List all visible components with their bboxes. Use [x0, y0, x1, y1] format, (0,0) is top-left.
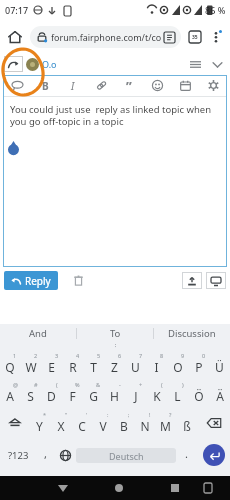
staticText: #	[34, 381, 38, 388]
staticText: ?	[169, 411, 172, 418]
staticText: %	[75, 381, 80, 388]
button[interactable]: Enter	[203, 444, 225, 466]
button[interactable]: Shift	[0, 407, 29, 438]
button[interactable]: ;	[113, 407, 134, 438]
button[interactable]: forum.fairphone.com/t/co	[30, 26, 181, 48]
staticText: ß	[183, 418, 191, 434]
staticText: 86 %	[205, 4, 226, 16]
button[interactable]: (	[146, 377, 167, 407]
button[interactable]: -	[104, 377, 125, 407]
button[interactable]: 0	[188, 349, 209, 377]
button[interactable]: Discussion	[154, 324, 230, 343]
staticText: C	[78, 418, 86, 434]
button[interactable]: Backspace	[197, 407, 230, 438]
button[interactable]: emoji	[143, 75, 171, 96]
button[interactable]: ,	[36, 438, 55, 472]
staticText: ;	[128, 411, 130, 418]
button[interactable]: ?	[155, 407, 176, 438]
button[interactable]: B	[31, 75, 59, 96]
button[interactable]: Recents	[157, 476, 192, 500]
button[interactable]: calendar	[171, 75, 199, 96]
staticText: O	[173, 359, 183, 375]
button[interactable]: Reply	[4, 271, 58, 290]
button[interactable]: 5	[83, 349, 104, 377]
button[interactable]: @	[0, 377, 20, 407]
button[interactable]: ß	[176, 407, 197, 438]
staticText: '	[86, 411, 88, 418]
button[interactable]: Reply as linked topic	[4, 56, 23, 72]
button[interactable]: '	[71, 407, 92, 438]
button[interactable]: 2	[20, 349, 41, 377]
button[interactable]: Ü	[209, 349, 230, 377]
button[interactable]: ?123	[0, 438, 36, 472]
staticText: ⋮	[112, 343, 119, 349]
staticText: B	[42, 79, 49, 93]
button[interactable]: &	[83, 377, 104, 407]
button[interactable]: link	[87, 75, 115, 96]
staticText: ”	[126, 77, 132, 95]
staticText: .	[185, 446, 188, 461]
button[interactable]: Preview	[206, 272, 226, 289]
button[interactable]: quote	[3, 75, 31, 96]
staticText: K	[153, 388, 161, 404]
button[interactable]: 9	[167, 349, 188, 377]
button[interactable]: Home	[4, 26, 26, 48]
button[interactable]: More options	[206, 27, 226, 47]
button[interactable]: 4	[62, 349, 83, 377]
button[interactable]: #	[20, 377, 41, 407]
button[interactable]: gear	[199, 75, 227, 96]
button[interactable]: Upload	[182, 272, 202, 289]
staticText: And	[29, 327, 47, 340]
button[interactable]: "	[50, 407, 71, 438]
staticText: Z	[111, 359, 118, 375]
button[interactable]: Rotate	[192, 476, 223, 500]
staticText: M	[160, 418, 171, 434]
button[interactable]: 1	[0, 349, 20, 377]
button[interactable]: Ä	[209, 377, 230, 407]
button[interactable]: Delete draft	[68, 270, 88, 290]
button[interactable]: Collapse	[208, 55, 226, 73]
button[interactable]: )	[167, 377, 188, 407]
button[interactable]: 3	[41, 349, 62, 377]
staticText: W	[25, 359, 37, 375]
button[interactable]: And	[0, 324, 76, 343]
button[interactable]: Toggle fullscreen	[186, 55, 204, 73]
button[interactable]: blockquote	[115, 75, 143, 96]
staticText: (	[161, 381, 163, 388]
button[interactable]: Deutsch	[76, 448, 176, 463]
button[interactable]: Ö	[188, 377, 209, 407]
staticText: Y	[36, 418, 43, 434]
staticText: 35	[192, 34, 198, 41]
staticText: 6	[118, 352, 122, 359]
button[interactable]: (	[41, 377, 62, 407]
button[interactable]: +	[125, 377, 146, 407]
button[interactable]: .	[176, 438, 197, 472]
staticText: 9	[181, 352, 185, 359]
staticText: To	[110, 327, 121, 340]
staticText: G	[89, 388, 98, 404]
button[interactable]: :	[92, 407, 113, 438]
button[interactable]: Tabs	[184, 26, 206, 48]
staticText: 2	[34, 352, 38, 359]
staticText: Deutsch	[109, 450, 144, 462]
staticText: Discussion	[168, 327, 216, 340]
staticText: 0	[202, 352, 206, 359]
button[interactable]: !	[134, 407, 155, 438]
button[interactable]: Change language	[55, 438, 76, 472]
staticText: 07:17	[5, 4, 29, 16]
staticText: H	[110, 388, 119, 404]
button[interactable]: Reader mode	[162, 29, 177, 45]
button[interactable]: Back	[45, 476, 80, 500]
button[interactable]: Home	[101, 476, 136, 500]
button[interactable]: %	[62, 377, 83, 407]
button[interactable]: *	[29, 407, 50, 438]
button[interactable]: I	[59, 75, 87, 96]
staticText: P	[195, 359, 203, 375]
staticText: I	[154, 359, 159, 375]
button[interactable]: 8	[146, 349, 167, 377]
button[interactable]: To	[77, 324, 153, 343]
staticText: Ö	[194, 388, 204, 404]
button[interactable]: 7	[125, 349, 146, 377]
button[interactable]: 6	[104, 349, 125, 377]
staticText: forum.fairphone.com/t/co	[51, 31, 162, 43]
